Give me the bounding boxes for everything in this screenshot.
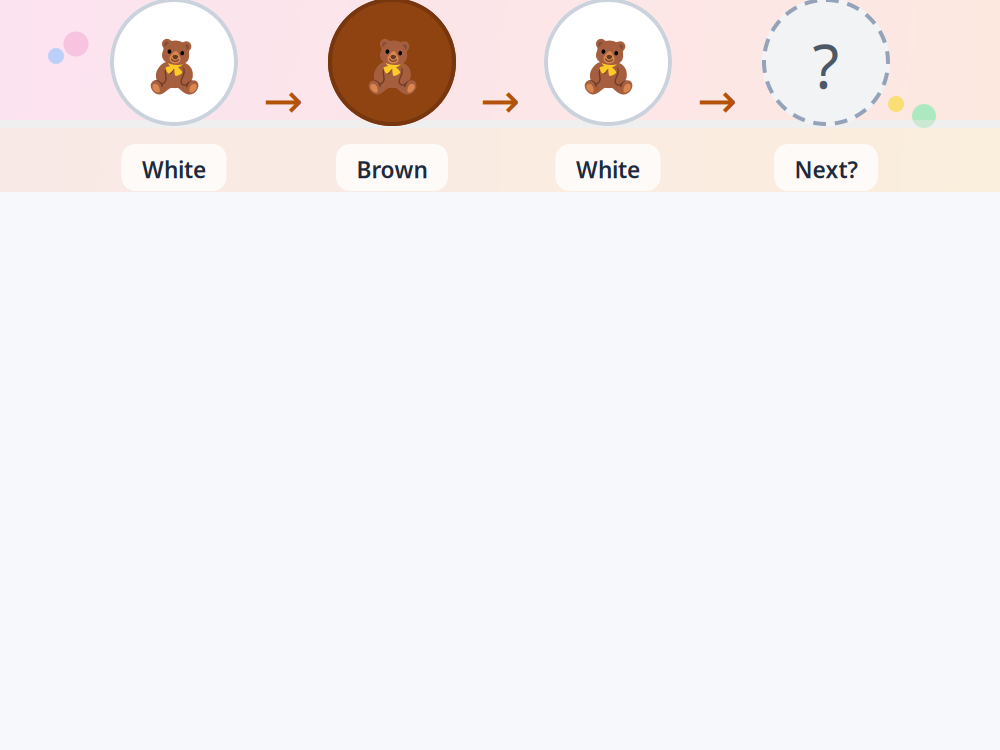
button[interactable]: Next? bbox=[762, 0, 890, 126]
staticText: White bbox=[142, 154, 206, 184]
staticText: 🧸 bbox=[360, 38, 423, 96]
button[interactable]: White bbox=[555, 144, 660, 191]
staticText: 🧸 bbox=[142, 38, 205, 96]
button[interactable]: White bbox=[121, 144, 226, 191]
staticText: 🧸 bbox=[576, 38, 639, 96]
button[interactable]: Brown bbox=[336, 144, 448, 191]
staticText: Next? bbox=[794, 154, 857, 184]
staticText: → bbox=[263, 74, 303, 128]
staticText: Brown bbox=[356, 154, 427, 184]
staticText: → bbox=[697, 74, 737, 128]
staticText: → bbox=[480, 74, 520, 128]
button[interactable]: Next? bbox=[774, 144, 878, 191]
button[interactable]: White bbox=[544, 0, 672, 126]
button[interactable]: White bbox=[110, 0, 238, 126]
button[interactable]: Brown bbox=[328, 0, 456, 126]
staticText: ? bbox=[812, 24, 839, 106]
staticText: White bbox=[576, 154, 640, 184]
